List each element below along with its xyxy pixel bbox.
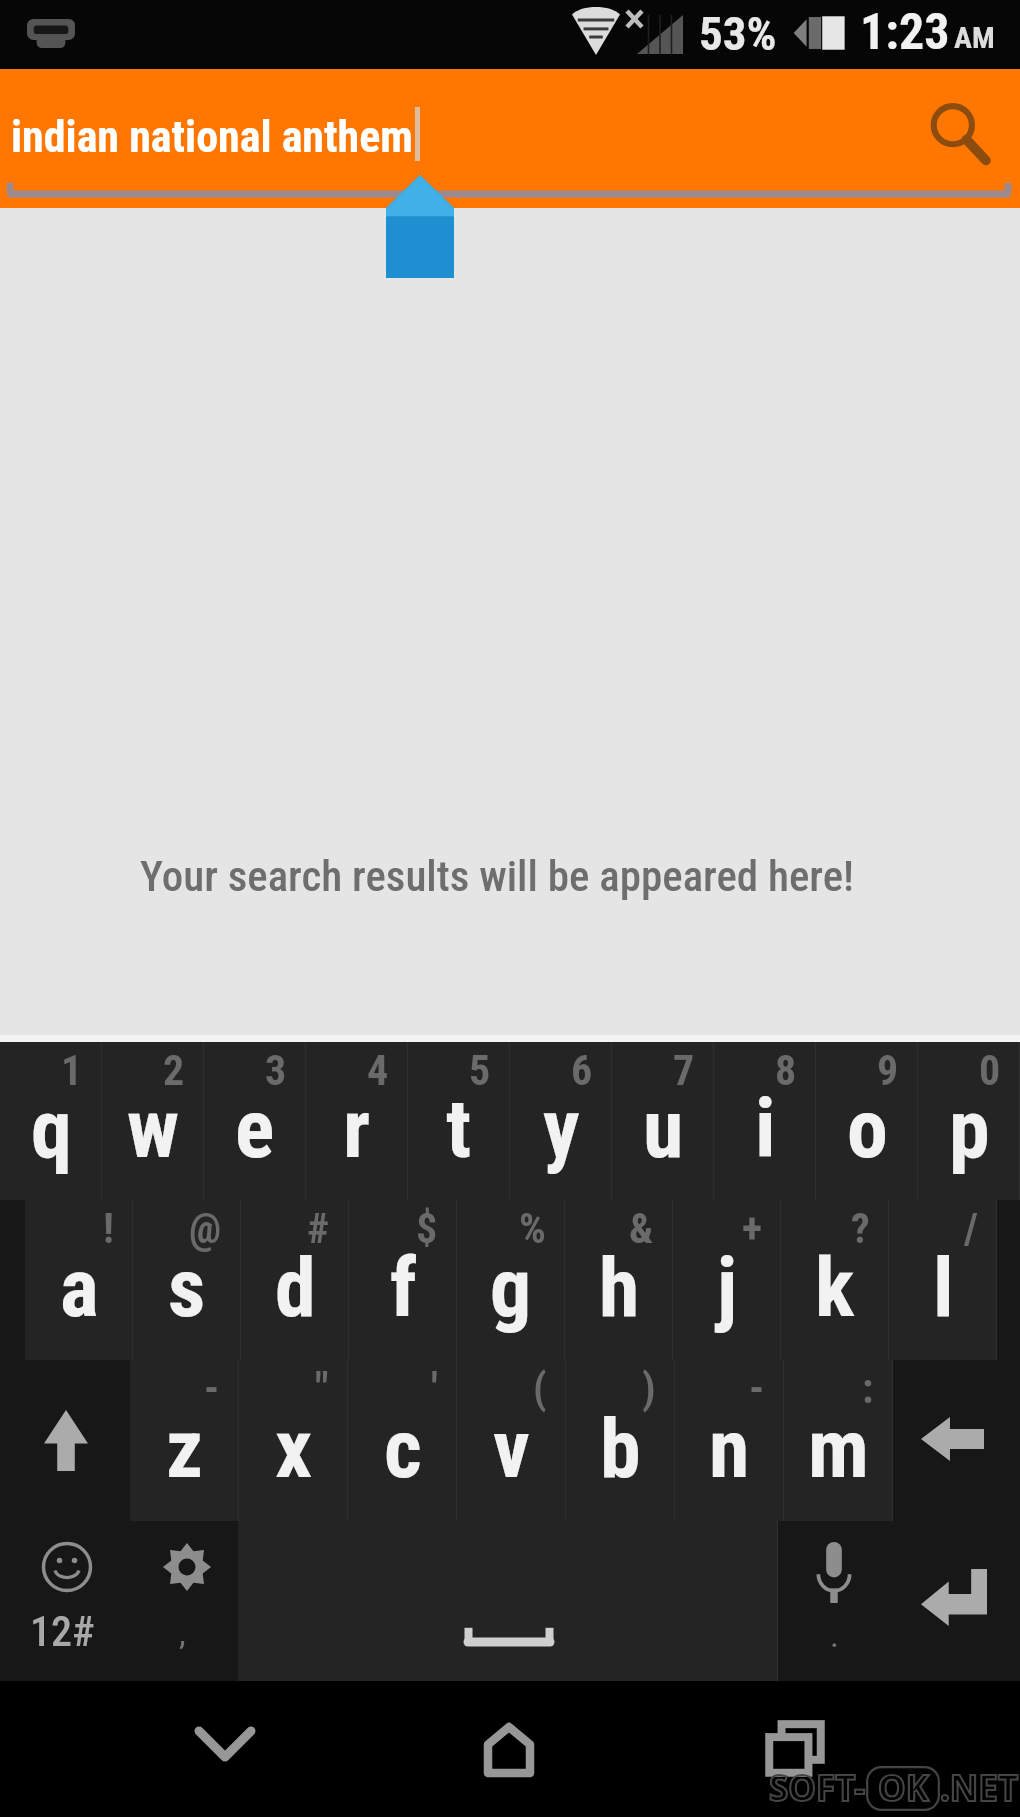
button[interactable]: & — [565, 1200, 673, 1360]
staticText: " — [315, 1364, 329, 1413]
staticText: v — [493, 1401, 530, 1497]
staticText: 1:23 — [860, 3, 950, 62]
staticText: 6 — [571, 1046, 593, 1095]
staticText: s — [168, 1240, 206, 1336]
staticText: # — [307, 1204, 330, 1253]
staticText: j — [717, 1240, 738, 1336]
staticText: ' — [431, 1364, 438, 1413]
staticText: m — [808, 1401, 869, 1497]
staticText: e — [235, 1081, 275, 1177]
staticText: . — [830, 1615, 839, 1655]
staticText: 5 — [469, 1046, 491, 1095]
button[interactable]: ! — [25, 1200, 133, 1360]
button[interactable]: 2 — [102, 1042, 204, 1200]
staticText: ! — [103, 1204, 114, 1253]
button[interactable]: Enter — [890, 1521, 1020, 1681]
staticText: 7 — [673, 1046, 695, 1095]
staticText: b — [600, 1401, 641, 1497]
staticText: p — [949, 1081, 990, 1177]
staticText: w — [127, 1081, 179, 1177]
staticText: x — [275, 1401, 313, 1497]
staticText: Your search results will be appeared her… — [140, 851, 854, 901]
button[interactable]: ' — [348, 1360, 457, 1521]
button[interactable]: 7 — [612, 1042, 714, 1200]
staticText: / — [964, 1204, 978, 1253]
staticText: : — [862, 1364, 874, 1413]
button[interactable]: - — [675, 1360, 784, 1521]
button[interactable]: $ — [349, 1200, 457, 1360]
staticText: q — [31, 1081, 72, 1177]
staticText: ? — [851, 1204, 870, 1253]
button[interactable]: Voice input — [778, 1521, 890, 1681]
button[interactable]: # — [241, 1200, 349, 1360]
staticText: y — [543, 1081, 580, 1177]
staticText: i — [755, 1081, 776, 1177]
staticText: AM — [954, 20, 995, 55]
button[interactable]: : — [784, 1360, 893, 1521]
button[interactable]: Recent apps — [715, 1681, 875, 1817]
staticText: - — [204, 1364, 220, 1413]
staticText: 4 — [367, 1046, 389, 1095]
button[interactable]: Home — [429, 1681, 589, 1817]
button[interactable]: Symbols — [0, 1521, 129, 1681]
staticText: ) — [642, 1364, 656, 1413]
button[interactable]: @ — [133, 1200, 241, 1360]
staticText: & — [629, 1204, 654, 1253]
staticText: , — [179, 1613, 186, 1653]
staticText: 12# — [30, 1607, 95, 1656]
button[interactable]: 0 — [918, 1042, 1020, 1200]
staticText: g — [490, 1240, 532, 1336]
button[interactable]: 5 — [408, 1042, 510, 1200]
button[interactable]: Search — [905, 81, 1015, 191]
staticText: 8 — [775, 1046, 797, 1095]
staticText: k — [815, 1240, 855, 1336]
button[interactable]: ? — [781, 1200, 889, 1360]
button[interactable]: 9 — [816, 1042, 918, 1200]
staticText: + — [742, 1204, 762, 1253]
staticText: % — [519, 1204, 546, 1253]
staticText: u — [643, 1081, 684, 1177]
staticText: - — [749, 1364, 765, 1413]
button[interactable]: ) — [566, 1360, 675, 1521]
staticText: 3 — [265, 1046, 287, 1095]
button[interactable]: 8 — [714, 1042, 816, 1200]
staticText: o — [847, 1081, 888, 1177]
staticText: @ — [189, 1204, 222, 1253]
button[interactable]: 6 — [510, 1042, 612, 1200]
button[interactable]: ( — [457, 1360, 566, 1521]
button[interactable]: Shift — [0, 1360, 130, 1521]
staticText: 1 — [61, 1046, 83, 1095]
button[interactable]: 4 — [306, 1042, 408, 1200]
button[interactable]: + — [673, 1200, 781, 1360]
staticText: z — [166, 1401, 204, 1497]
button[interactable]: - — [130, 1360, 239, 1521]
staticText: h — [599, 1240, 640, 1336]
staticText: a — [60, 1240, 99, 1336]
staticText: .NET — [940, 1764, 1019, 1812]
button[interactable]: 1 — [0, 1042, 102, 1200]
staticText: OK — [878, 1764, 929, 1812]
staticText: r — [343, 1081, 371, 1177]
button[interactable]: " — [239, 1360, 348, 1521]
button[interactable]: Backspace — [893, 1360, 1020, 1521]
staticText: t — [446, 1081, 472, 1177]
staticText: 2 — [163, 1046, 185, 1095]
button[interactable]: % — [457, 1200, 565, 1360]
staticText: 0 — [979, 1046, 1001, 1095]
button[interactable]: Hide keyboard — [145, 1681, 305, 1817]
staticText: 9 — [877, 1046, 899, 1095]
staticText: ( — [533, 1364, 547, 1413]
button[interactable]: Space — [238, 1521, 778, 1681]
staticText: indian national anthem — [11, 111, 413, 163]
button[interactable]: 3 — [204, 1042, 306, 1200]
button[interactable]: / — [889, 1200, 997, 1360]
staticText: $ — [416, 1204, 438, 1253]
staticText: 53% — [699, 6, 777, 61]
button[interactable]: Settings — [129, 1521, 238, 1681]
staticText: SOFT- — [769, 1764, 866, 1812]
staticText: d — [275, 1240, 316, 1336]
staticText: f — [390, 1240, 417, 1336]
staticText: l — [933, 1240, 954, 1336]
